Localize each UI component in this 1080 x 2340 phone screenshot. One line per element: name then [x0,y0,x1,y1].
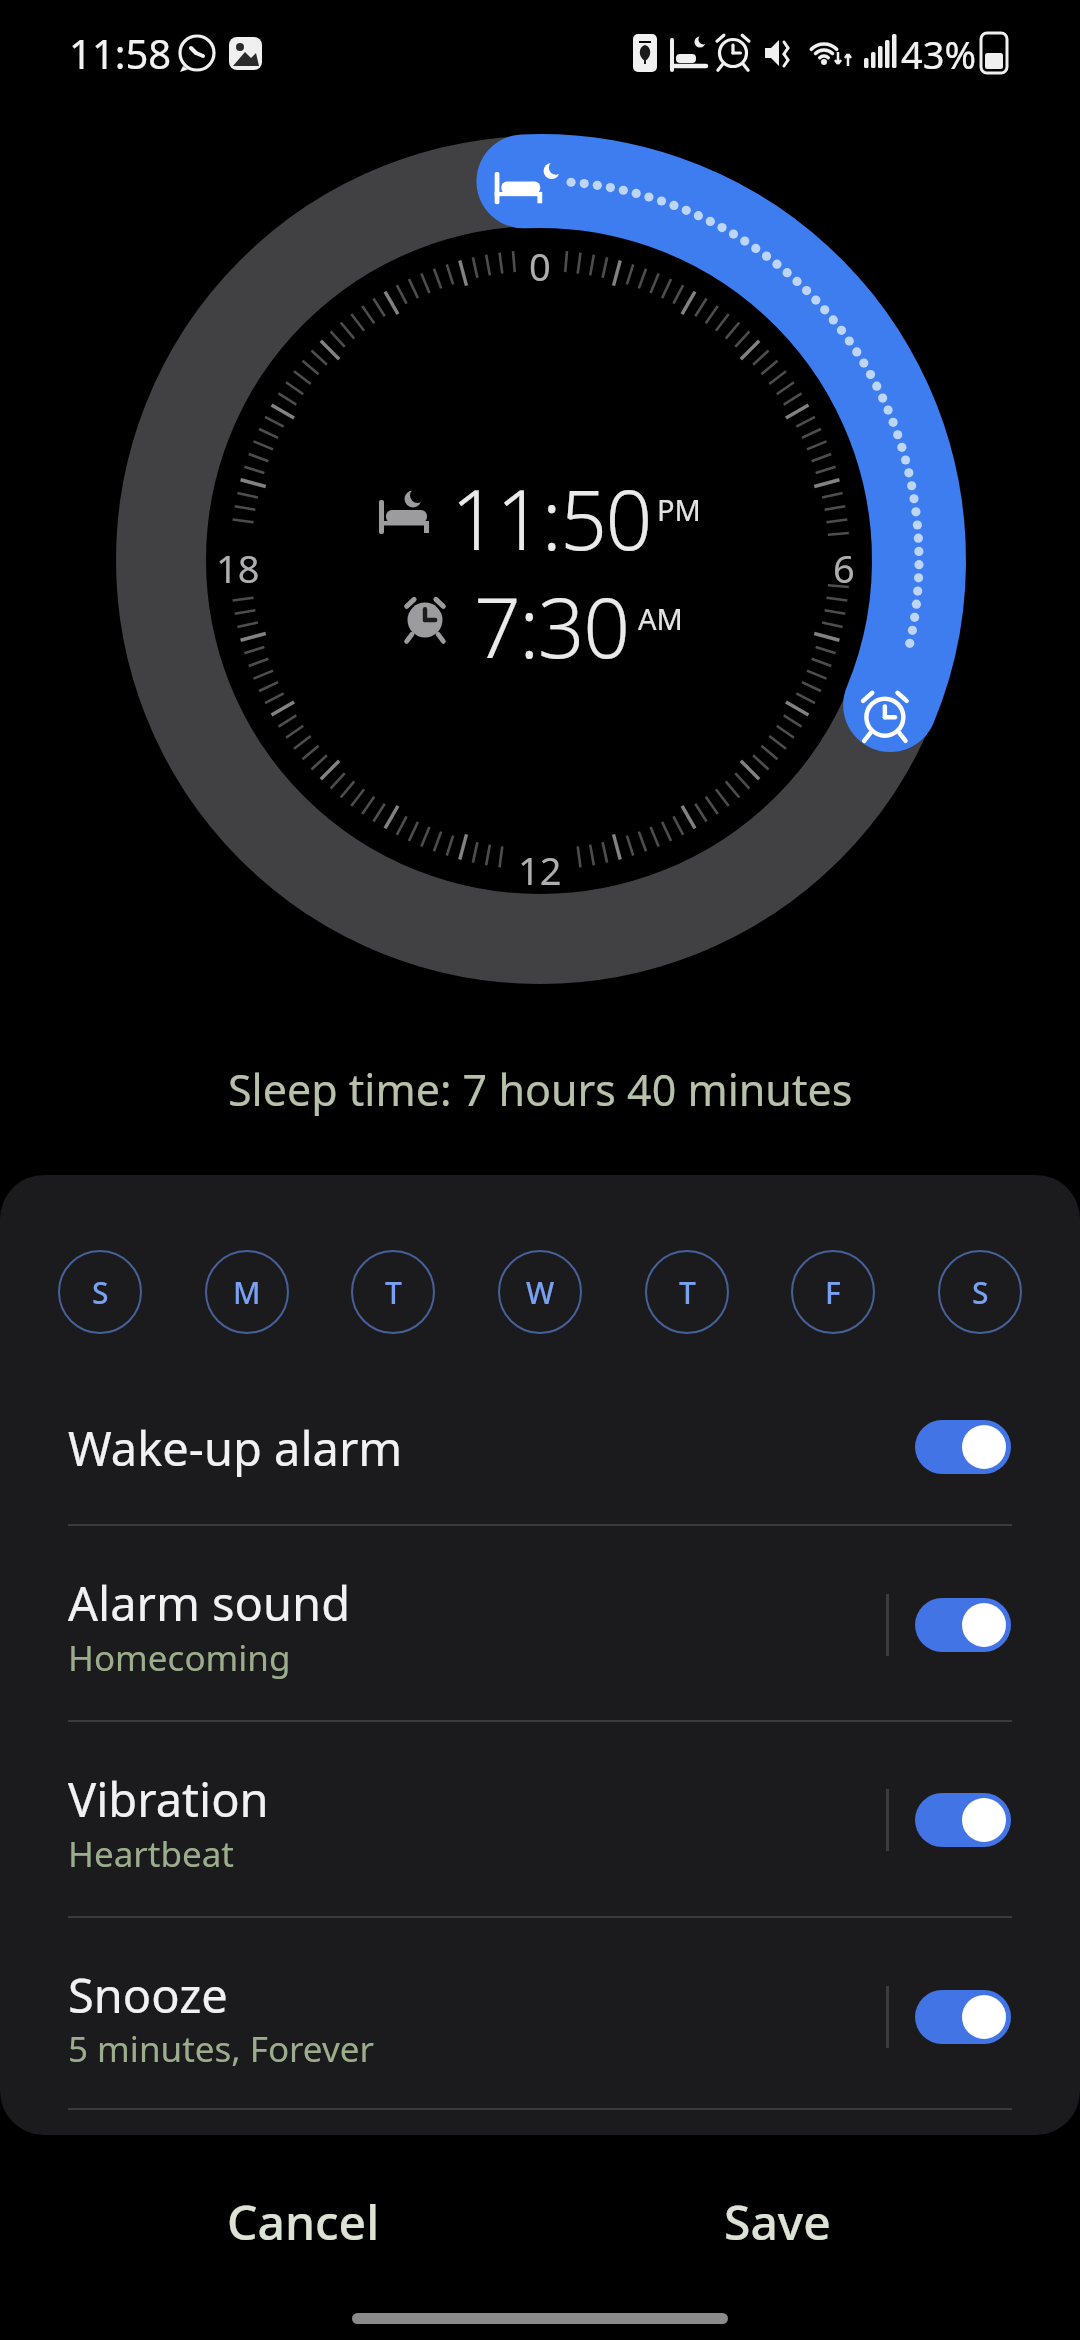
staticText: 6 [833,542,855,586]
button[interactable] [915,1598,1011,1652]
button[interactable] [915,1420,1011,1474]
staticText: 11:58 [69,26,172,78]
staticText: 11:50 [451,462,651,558]
button[interactable]: T [645,1250,729,1334]
staticText: 0 [529,240,551,284]
staticText: Save [724,2189,831,2254]
staticText: Heartbeat [68,1830,234,1878]
staticText: 18 [216,542,260,586]
staticText: M [233,1272,261,1313]
staticText: Cancel [227,2189,380,2254]
staticText: W [526,1272,555,1313]
staticText: T [679,1272,696,1313]
button[interactable] [0,1390,1080,1504]
button[interactable]: Save [597,2165,957,2277]
button[interactable]: T [351,1250,435,1334]
staticText: Alarm sound [68,1571,351,1634]
staticText: S [92,1272,109,1313]
staticText: 5 minutes, Forever [68,2025,374,2073]
button[interactable]: S [58,1250,142,1334]
staticText: 7:30 [474,570,629,666]
button[interactable]: W [498,1250,582,1334]
button[interactable]: S [938,1250,1022,1334]
staticText: 12 [518,844,562,888]
staticText: AM [638,599,683,638]
button[interactable]: Cancel [123,2165,483,2277]
staticText: Snooze [68,1963,228,2026]
staticText: PM [657,490,701,529]
staticText: Vibration [68,1767,269,1830]
staticText: Wake-up alarm [68,1416,403,1479]
staticText: 43% [901,28,977,76]
staticText: Sleep time: 7 hours 40 minutes [228,1060,853,1116]
button[interactable] [915,1793,1011,1847]
staticText: T [385,1272,402,1313]
button[interactable] [915,1990,1011,2044]
button[interactable]: M [205,1250,289,1334]
staticText: F [825,1272,841,1313]
staticText: Homecoming [68,1634,291,1682]
button[interactable]: F [791,1250,875,1334]
staticText: S [972,1272,989,1313]
